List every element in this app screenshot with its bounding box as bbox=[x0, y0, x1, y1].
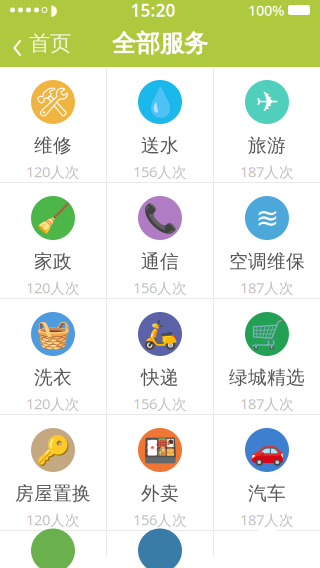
staticText: 🚗 bbox=[249, 434, 284, 466]
staticText: 🛠 bbox=[35, 86, 71, 118]
staticText: 房屋置换 bbox=[15, 482, 91, 505]
staticText: 🔑 bbox=[35, 434, 70, 466]
button[interactable]: 💧 bbox=[107, 67, 213, 182]
button[interactable]: ‹ bbox=[0, 20, 85, 67]
staticText: ≋ bbox=[255, 202, 278, 234]
staticText: 156人次 bbox=[133, 394, 187, 413]
staticText: 156人次 bbox=[133, 162, 187, 181]
button[interactable]: 📞 bbox=[107, 183, 213, 298]
staticText: 187人次 bbox=[240, 278, 294, 297]
staticText: 120人次 bbox=[26, 394, 80, 413]
button[interactable]: 🔑 bbox=[0, 415, 106, 530]
staticText: 🧹 bbox=[35, 202, 70, 234]
button[interactable]: 🛠 bbox=[0, 67, 106, 182]
staticText: 全部服务 bbox=[112, 29, 208, 58]
staticText: 洗衣 bbox=[34, 366, 72, 389]
staticText: 📞 bbox=[142, 202, 177, 234]
button[interactable]: 🍱 bbox=[107, 415, 213, 530]
staticText: 🧺 bbox=[35, 318, 70, 350]
staticText: 维修 bbox=[34, 134, 72, 157]
button[interactable]: 🚗 bbox=[214, 415, 320, 530]
staticText: 100% bbox=[248, 0, 284, 20]
staticText: 快递 bbox=[141, 366, 179, 389]
staticText: 旅游 bbox=[248, 134, 286, 157]
button[interactable]: 🧺 bbox=[0, 299, 106, 414]
staticText: 家政 bbox=[34, 250, 72, 273]
staticText: 120人次 bbox=[26, 510, 80, 529]
staticText: 绿城精选 bbox=[229, 366, 305, 389]
staticText: 15:20 bbox=[130, 0, 175, 21]
staticText: ✈ bbox=[255, 86, 278, 118]
staticText: 187人次 bbox=[240, 510, 294, 529]
staticText: 💧 bbox=[142, 86, 177, 118]
staticText: 空调维保 bbox=[229, 250, 305, 273]
staticText: 187人次 bbox=[240, 162, 294, 181]
staticText: 🛒 bbox=[249, 318, 284, 350]
button[interactable]: 🛒 bbox=[214, 299, 320, 414]
staticText: 156人次 bbox=[133, 278, 187, 297]
staticText: 汽车 bbox=[248, 482, 286, 505]
staticText: ◗ bbox=[50, 2, 58, 18]
button[interactable]: ✈ bbox=[214, 67, 320, 182]
button[interactable]: 🛵 bbox=[107, 299, 213, 414]
staticText: 送水 bbox=[141, 134, 179, 157]
button[interactable]: ≋ bbox=[214, 183, 320, 298]
staticText: 187人次 bbox=[240, 394, 294, 413]
staticText: 外卖 bbox=[141, 482, 179, 505]
staticText: 首页 bbox=[29, 30, 71, 57]
staticText: 🍱 bbox=[142, 434, 177, 466]
staticText: ‹ bbox=[12, 17, 23, 70]
button[interactable]: 🧹 bbox=[0, 183, 106, 298]
staticText: 120人次 bbox=[26, 162, 80, 181]
staticText: 通信 bbox=[141, 250, 179, 273]
staticText: 120人次 bbox=[26, 278, 80, 297]
staticText: 🛵 bbox=[142, 318, 177, 350]
staticText: 156人次 bbox=[133, 510, 187, 529]
